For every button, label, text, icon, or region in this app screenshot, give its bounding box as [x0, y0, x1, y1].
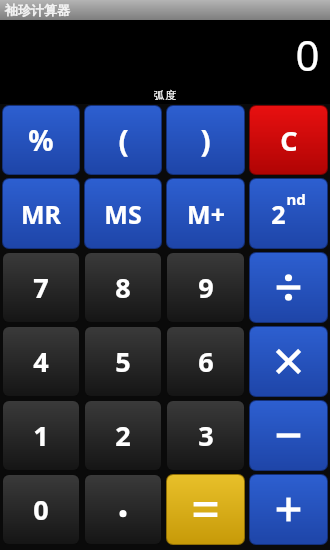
- button[interactable]: (: [85, 106, 161, 174]
- button[interactable]: Decimal point: [85, 475, 161, 544]
- button[interactable]: 8: [85, 253, 161, 322]
- button[interactable]: MR: [3, 179, 79, 248]
- button[interactable]: ): [167, 106, 244, 174]
- button[interactable]: Divide: [250, 253, 327, 322]
- staticText: C: [280, 122, 298, 159]
- button[interactable]: Equals: [167, 475, 244, 544]
- staticText: M+: [187, 197, 225, 231]
- button[interactable]: Multiply: [250, 327, 327, 396]
- staticText: 0: [33, 491, 49, 528]
- button[interactable]: M+: [167, 179, 244, 248]
- button[interactable]: 0: [3, 475, 79, 544]
- staticText: 2: [115, 417, 131, 454]
- button[interactable]: 9: [167, 253, 244, 322]
- button[interactable]: 3: [167, 401, 244, 470]
- staticText: 1: [33, 417, 49, 454]
- staticText: nd: [286, 189, 306, 209]
- staticText: 7: [33, 269, 49, 306]
- staticText: 8: [115, 269, 131, 306]
- staticText: %: [28, 121, 54, 159]
- staticText: MS: [104, 197, 142, 231]
- staticText: 6: [198, 343, 214, 380]
- staticText: 2: [271, 197, 286, 231]
- staticText: 4: [33, 343, 49, 380]
- button[interactable]: 6: [167, 327, 244, 396]
- staticText: 5: [115, 343, 131, 380]
- button[interactable]: 5: [85, 327, 161, 396]
- button[interactable]: 1: [3, 401, 79, 470]
- button[interactable]: Subtract: [250, 401, 327, 470]
- staticText: 3: [198, 417, 214, 454]
- button[interactable]: %: [3, 106, 79, 174]
- button[interactable]: 7: [3, 253, 79, 322]
- button[interactable]: 2: [85, 401, 161, 470]
- button[interactable]: C: [250, 106, 327, 174]
- button[interactable]: 2: [250, 179, 327, 248]
- staticText: ): [200, 120, 211, 161]
- staticText: 0: [295, 26, 320, 83]
- button[interactable]: Add: [250, 475, 327, 544]
- staticText: MR: [21, 197, 61, 231]
- staticText: 9: [198, 269, 214, 306]
- staticText: (: [118, 120, 129, 161]
- staticText: 袖珍计算器: [5, 2, 70, 18]
- button[interactable]: 4: [3, 327, 79, 396]
- button[interactable]: MS: [85, 179, 161, 248]
- staticText: 弧度: [154, 88, 176, 102]
